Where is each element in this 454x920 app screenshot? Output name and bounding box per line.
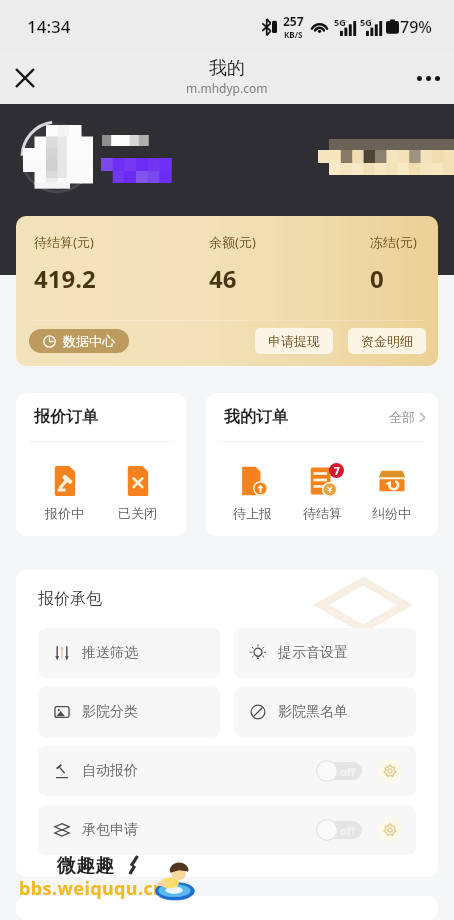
staticText: 419.2 bbox=[34, 262, 96, 295]
staticText: 46 bbox=[209, 262, 237, 295]
staticText: 推送筛选 bbox=[82, 644, 138, 662]
staticText: 报价中 bbox=[45, 505, 84, 521]
button[interactable]: 数据中心 bbox=[29, 329, 129, 353]
staticText: 冻结(元) bbox=[370, 233, 417, 251]
button[interactable]: Settings bbox=[378, 818, 402, 842]
staticText: 提示音设置 bbox=[278, 644, 348, 662]
button[interactable]: 影院黑名单 bbox=[234, 687, 416, 737]
staticText: 报价订单 bbox=[34, 407, 98, 427]
button[interactable]: 影院分类 bbox=[38, 687, 220, 737]
staticText: off bbox=[340, 823, 356, 838]
button[interactable]: More options bbox=[408, 58, 448, 98]
staticText: 影院黑名单 bbox=[278, 703, 348, 721]
staticText: 全部 bbox=[389, 409, 415, 425]
staticText: off bbox=[340, 764, 356, 779]
button[interactable]: 已关闭 bbox=[114, 464, 161, 521]
staticText: 资金明细 bbox=[361, 333, 413, 349]
button[interactable]: 提示音设置 bbox=[234, 628, 416, 678]
button[interactable]: 自动报价 bbox=[38, 746, 416, 796]
staticText: 数据中心 bbox=[63, 333, 115, 349]
staticText: bbs.weiququ.cn bbox=[19, 876, 166, 901]
staticText: 我的 bbox=[209, 57, 245, 80]
staticText: 5G bbox=[334, 16, 346, 28]
staticText: 影院分类 bbox=[82, 703, 138, 721]
staticText: 5G bbox=[360, 16, 372, 28]
staticText: 7 bbox=[334, 464, 340, 478]
button[interactable]: Settings bbox=[378, 759, 402, 783]
staticText: 自动报价 bbox=[82, 762, 138, 780]
button[interactable]: 资金明细 bbox=[348, 328, 426, 354]
staticText: 纠纷中 bbox=[372, 505, 411, 521]
staticText: 已关闭 bbox=[118, 505, 157, 521]
staticText: 待结算 bbox=[303, 505, 342, 521]
button[interactable]: 待上报 bbox=[229, 464, 276, 521]
staticText: 余额(元) bbox=[209, 233, 256, 251]
button[interactable]: 推送筛选 bbox=[38, 628, 220, 678]
button[interactable]: 承包申请 bbox=[38, 805, 416, 855]
staticText: 待结算(元) bbox=[34, 233, 94, 251]
staticText: 257 bbox=[283, 13, 304, 29]
staticText: 我的订单 bbox=[224, 407, 288, 427]
staticText: 14:34 bbox=[27, 15, 71, 38]
staticText: 承包申请 bbox=[82, 821, 138, 839]
staticText: 报价承包 bbox=[38, 589, 102, 609]
button[interactable]: 7 bbox=[299, 464, 346, 521]
button[interactable]: 纠纷中 bbox=[368, 464, 415, 521]
button[interactable]: 全部 bbox=[389, 405, 426, 429]
button[interactable]: 申请提现 bbox=[255, 328, 333, 354]
staticText: 0 bbox=[370, 262, 384, 295]
button[interactable]: 报价中 bbox=[41, 464, 88, 521]
staticText: 申请提现 bbox=[268, 333, 320, 349]
button[interactable]: Close bbox=[5, 58, 45, 98]
staticText: 待上报 bbox=[233, 505, 272, 521]
staticText: m.mhdyp.com bbox=[186, 80, 268, 96]
staticText: 微趣趣 bbox=[57, 854, 114, 878]
staticText: 79% bbox=[400, 16, 432, 38]
staticText: KB/S bbox=[284, 29, 303, 40]
